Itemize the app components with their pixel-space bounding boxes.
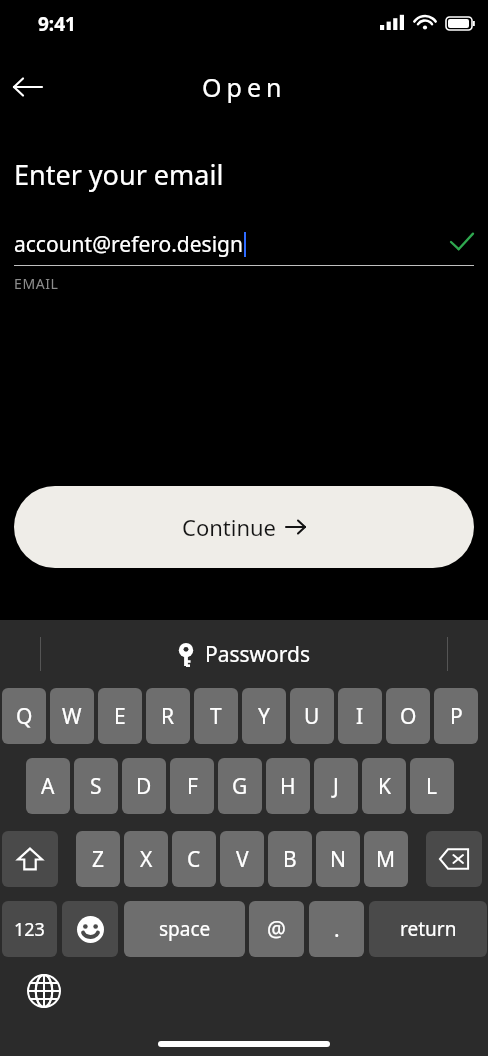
button[interactable]: key — [2, 831, 58, 887]
staticText: K — [378, 772, 391, 801]
staticText: V — [236, 845, 249, 874]
staticText: U — [304, 702, 320, 731]
staticText: X — [140, 845, 153, 874]
button[interactable]: A — [26, 758, 70, 814]
staticText: O — [400, 702, 417, 731]
staticText: Continue — [182, 512, 277, 542]
staticText: L — [426, 772, 438, 801]
other: Backspace — [426, 831, 482, 887]
staticText: space — [159, 916, 211, 942]
staticText: account@refero.design — [14, 230, 243, 259]
staticText: P — [450, 702, 463, 731]
button[interactable]: 123 — [2, 901, 57, 957]
staticText: A — [41, 772, 55, 801]
staticText: T — [210, 702, 222, 731]
button[interactable]: Z — [76, 831, 120, 887]
button[interactable]: D — [122, 758, 166, 814]
staticText: Z — [92, 845, 105, 874]
button[interactable]: key — [62, 901, 118, 957]
staticText: W — [62, 702, 82, 731]
button[interactable]: O — [386, 688, 430, 744]
button[interactable]: W — [50, 688, 94, 744]
button[interactable]: X — [124, 831, 168, 887]
button[interactable]: F — [170, 758, 214, 814]
button[interactable]: K — [362, 758, 406, 814]
staticText: S — [90, 772, 102, 801]
button[interactable]: space — [124, 901, 245, 957]
staticText: C — [187, 845, 201, 874]
staticText: E — [114, 702, 126, 731]
button[interactable]: Passwords — [177, 640, 311, 669]
button[interactable]: B — [268, 831, 312, 887]
button[interactable]: N — [316, 831, 360, 887]
button[interactable]: J — [314, 758, 358, 814]
staticText: Passwords — [205, 640, 311, 669]
staticText: G — [232, 772, 248, 801]
button[interactable]: I — [338, 688, 382, 744]
staticText: 9:41 — [38, 11, 76, 37]
other: Shift — [2, 831, 58, 887]
button[interactable]: H — [266, 758, 310, 814]
button[interactable]: C — [172, 831, 216, 887]
staticText: I — [356, 702, 364, 731]
staticText: Open — [202, 70, 287, 104]
staticText: return — [400, 916, 457, 942]
button[interactable]: Back — [0, 59, 56, 115]
button[interactable]: return — [369, 901, 487, 957]
button[interactable]: Y — [242, 688, 286, 744]
other: Emoji — [62, 901, 118, 957]
button[interactable]: T — [194, 688, 238, 744]
button[interactable]: . — [309, 901, 364, 957]
staticText: Enter your email — [14, 156, 224, 193]
staticText: EMAIL — [14, 274, 59, 293]
staticText: M — [376, 845, 396, 874]
button[interactable]: P — [434, 688, 478, 744]
button[interactable]: E — [98, 688, 142, 744]
staticText: D — [136, 772, 152, 801]
button[interactable]: V — [220, 831, 264, 887]
staticText: @ — [267, 915, 286, 944]
staticText: . — [334, 915, 340, 944]
staticText: J — [333, 772, 339, 801]
button[interactable]: @ — [249, 901, 304, 957]
staticText: Y — [258, 702, 270, 731]
staticText: N — [330, 845, 346, 874]
button[interactable]: S — [74, 758, 118, 814]
button[interactable]: account@refero.design — [14, 223, 474, 265]
button[interactable]: R — [146, 688, 190, 744]
staticText: R — [161, 702, 175, 731]
staticText: H — [280, 772, 296, 801]
button[interactable]: G — [218, 758, 262, 814]
staticText: Q — [16, 702, 33, 731]
button[interactable]: Continue — [14, 486, 474, 568]
button[interactable]: key — [426, 831, 482, 887]
button[interactable]: L — [410, 758, 454, 814]
staticText: 123 — [14, 917, 45, 942]
staticText: F — [187, 772, 198, 801]
button[interactable]: Q — [2, 688, 46, 744]
button[interactable]: M — [364, 831, 408, 887]
staticText: B — [283, 845, 297, 874]
button[interactable]: U — [290, 688, 334, 744]
button[interactable]: Change keyboard language — [20, 967, 68, 1015]
